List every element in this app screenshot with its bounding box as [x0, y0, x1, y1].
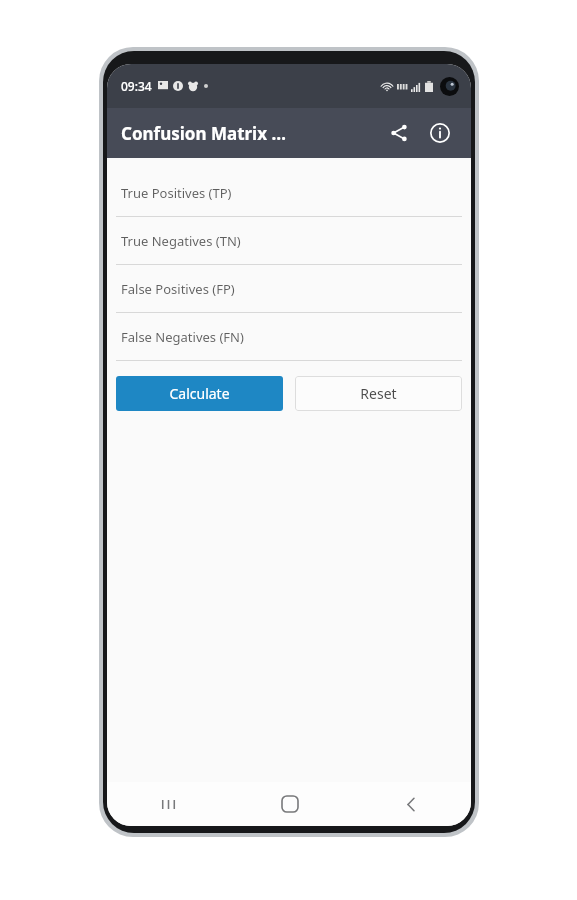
staticText: False Negatives (FN): [121, 328, 244, 346]
button[interactable]: Home: [229, 782, 350, 826]
button[interactable]: False Positives (FP): [116, 265, 462, 313]
button[interactable]: False Negatives (FN): [116, 313, 462, 361]
button[interactable]: True Positives (TP): [116, 169, 462, 217]
staticText: Confusion Matrix …: [121, 122, 286, 145]
button[interactable]: Recent apps: [107, 782, 229, 826]
button[interactable]: True Negatives (TN): [116, 217, 462, 265]
button[interactable]: Back: [350, 782, 471, 826]
button[interactable]: Reset: [295, 376, 462, 411]
button[interactable]: Calculate: [116, 376, 283, 411]
staticText: Reset: [360, 384, 397, 403]
staticText: True Negatives (TN): [121, 232, 241, 250]
staticText: 09:34: [121, 78, 152, 94]
staticText: False Positives (FP): [121, 280, 235, 298]
staticText: True Positives (TP): [121, 184, 232, 202]
button[interactable]: Info: [423, 116, 457, 150]
button[interactable]: Share: [382, 116, 416, 150]
staticText: Calculate: [169, 384, 230, 403]
